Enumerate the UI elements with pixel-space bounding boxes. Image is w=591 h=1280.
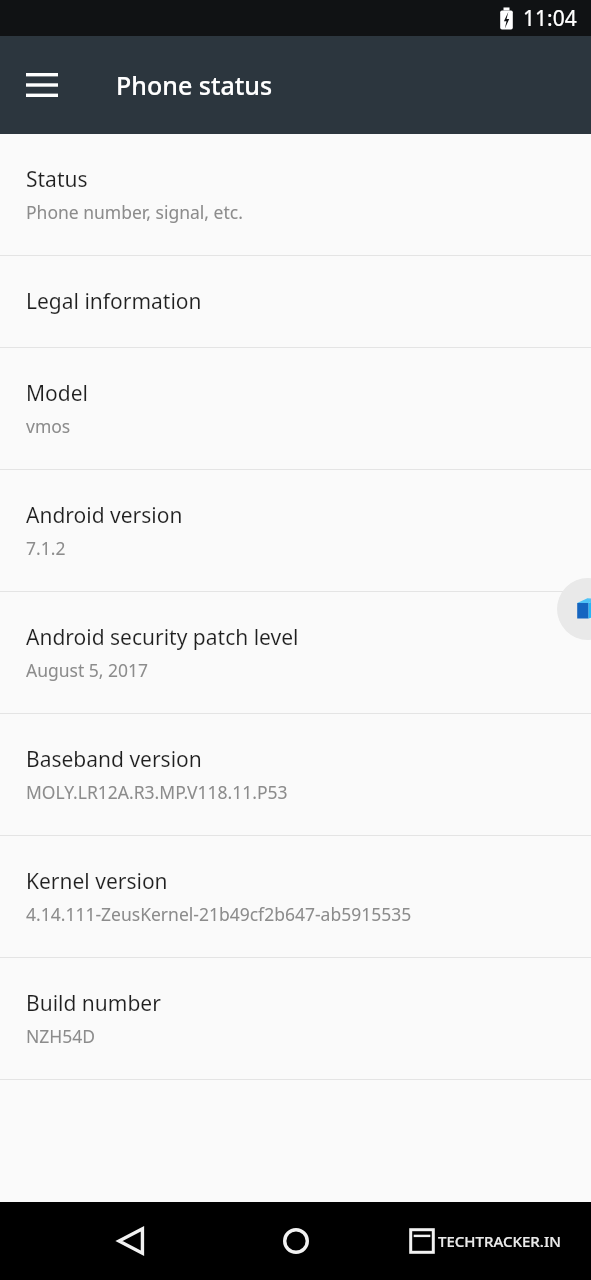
- button[interactable]: Recent apps: [409, 1228, 561, 1254]
- staticText: NZH54D: [26, 1024, 96, 1048]
- staticText: 4.14.111-ZeusKernel-21b49cf2b647-ab59155…: [26, 902, 412, 926]
- staticText: Phone number, signal, etc.: [26, 200, 243, 224]
- button[interactable]: Baseband version: [0, 714, 591, 835]
- staticText: Kernel version: [26, 867, 168, 896]
- button[interactable]: Open navigation menu: [14, 57, 70, 113]
- staticText: MOLY.LR12A.R3.MP.V118.11.P53: [26, 780, 288, 804]
- staticText: Build number: [26, 989, 161, 1018]
- staticText: vmos: [26, 414, 71, 438]
- staticText: 7.1.2: [26, 536, 66, 560]
- button[interactable]: Floating assistant: [557, 578, 591, 640]
- staticText: Phone status: [116, 68, 273, 102]
- button[interactable]: Android version: [0, 470, 591, 591]
- staticText: Android version: [26, 501, 183, 530]
- staticText: Model: [26, 379, 88, 408]
- button[interactable]: Back: [100, 1210, 162, 1272]
- button[interactable]: Kernel version: [0, 836, 591, 957]
- button[interactable]: Status: [0, 134, 591, 255]
- button[interactable]: Legal information: [0, 256, 591, 347]
- button[interactable]: Model: [0, 348, 591, 469]
- staticText: Legal information: [26, 287, 202, 316]
- staticText: August 5, 2017: [26, 658, 149, 682]
- staticText: TECHTRACKER.IN: [438, 1231, 561, 1251]
- button[interactable]: Home: [265, 1210, 327, 1272]
- staticText: Baseband version: [26, 745, 202, 774]
- button[interactable]: Android security patch level: [0, 592, 591, 713]
- staticText: Android security patch level: [26, 623, 299, 652]
- button[interactable]: Build number: [0, 958, 591, 1079]
- staticText: Status: [26, 165, 88, 194]
- staticText: 11:04: [523, 4, 577, 33]
